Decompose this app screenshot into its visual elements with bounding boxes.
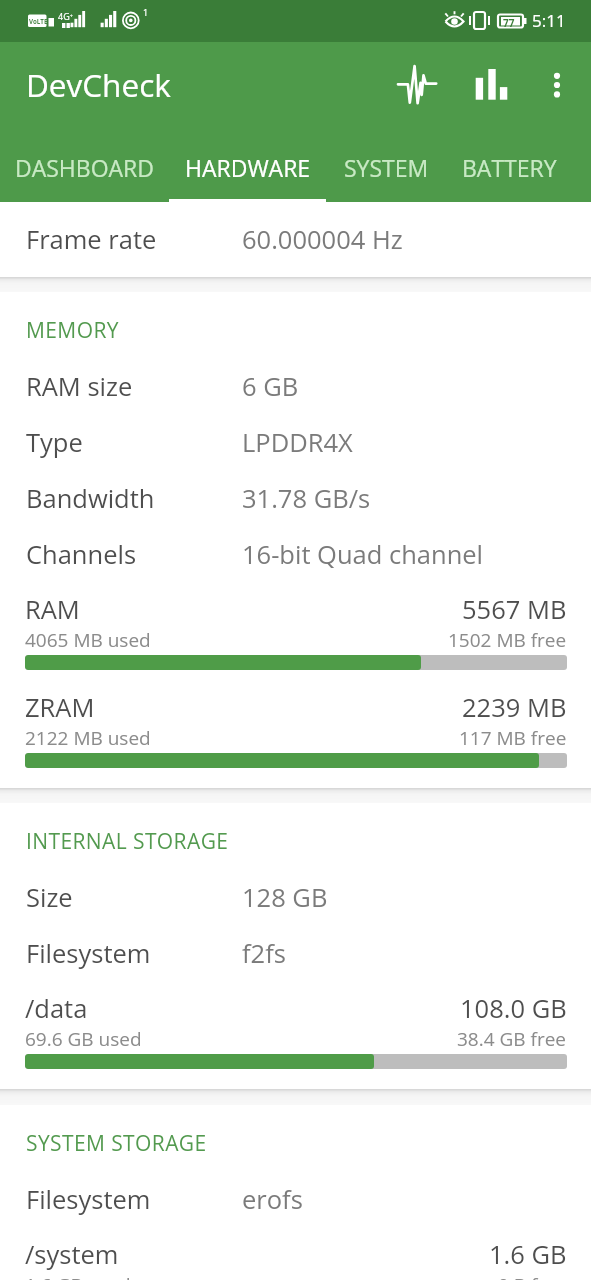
staticText: 0 B free — [498, 1272, 567, 1280]
button[interactable]: BATTERY — [446, 145, 572, 202]
staticText: RAM — [25, 592, 80, 627]
button[interactable]: Filesystem — [0, 1171, 591, 1227]
staticText: ZRAM — [25, 690, 95, 725]
staticText: DASHBOARD — [15, 152, 154, 183]
button[interactable]: Type — [0, 414, 591, 470]
staticText: 5567 MB — [462, 592, 567, 627]
staticText: Frame rate — [26, 222, 157, 257]
staticText: 2239 MB — [462, 690, 567, 725]
staticText: SYSTEM STORAGE — [26, 1129, 207, 1158]
staticText: erofs — [242, 1182, 303, 1217]
staticText: SYSTEM — [344, 152, 429, 183]
button[interactable]: Size — [0, 869, 591, 925]
staticText: 1.6 GB — [489, 1237, 567, 1272]
button[interactable]: Frame rate — [0, 202, 591, 277]
staticText: 4065 MB used — [25, 627, 151, 653]
staticText: 60.000004 Hz — [242, 222, 403, 257]
button[interactable]: More options — [533, 61, 581, 109]
staticText: Filesystem — [26, 936, 151, 971]
button[interactable]: /data — [0, 981, 591, 1089]
staticText: BATTERY — [462, 152, 557, 183]
staticText: MEMORY — [26, 316, 119, 345]
staticText: VoLTE — [29, 17, 48, 25]
staticText: 31.78 GB/s — [242, 481, 371, 516]
button[interactable]: SYSTEM — [326, 145, 446, 202]
button[interactable]: Statistics — [467, 61, 515, 109]
staticText: Bandwidth — [26, 481, 155, 516]
staticText: 1 — [143, 6, 149, 18]
staticText: /data — [25, 991, 88, 1026]
staticText: Filesystem — [26, 1182, 151, 1217]
staticText: Type — [26, 425, 83, 460]
staticText: 6 GB — [242, 369, 299, 404]
staticText: 2122 MB used — [25, 725, 151, 751]
button[interactable]: HARDWARE — [169, 145, 326, 202]
staticText: Channels — [26, 537, 137, 572]
button[interactable]: Bandwidth — [0, 470, 591, 526]
button[interactable]: RAM — [0, 582, 591, 680]
staticText: RAM size — [26, 369, 133, 404]
button[interactable]: Channels — [0, 526, 591, 582]
button[interactable]: RAM size — [0, 358, 591, 414]
staticText: 117 MB free — [459, 725, 567, 751]
staticText: 69.6 GB used — [25, 1026, 142, 1052]
staticText: DevCheck — [26, 63, 171, 106]
staticText: 38.4 GB free — [457, 1026, 567, 1052]
button[interactable]: Filesystem — [0, 925, 591, 981]
staticText: 1502 MB free — [448, 627, 567, 653]
staticText: 5:11 — [532, 9, 566, 32]
staticText: Size — [26, 880, 73, 915]
button[interactable]: Monitor — [393, 61, 441, 109]
staticText: 1.6 GB used — [25, 1272, 131, 1280]
staticText: INTERNAL STORAGE — [26, 827, 229, 856]
staticText: 16-bit Quad channel — [242, 537, 484, 572]
staticText: 77 — [503, 16, 515, 30]
button[interactable]: DASHBOARD — [0, 145, 169, 202]
staticText: HARDWARE — [185, 152, 311, 183]
button[interactable]: ZRAM — [0, 680, 591, 788]
staticText: f2fs — [242, 936, 286, 971]
staticText: LPDDR4X — [242, 425, 353, 460]
staticText: 128 GB — [242, 880, 328, 915]
staticText: /system — [25, 1237, 119, 1272]
staticText: 108.0 GB — [460, 991, 567, 1026]
button[interactable]: /system — [0, 1227, 591, 1280]
staticText: 4G⁺ — [58, 10, 73, 22]
